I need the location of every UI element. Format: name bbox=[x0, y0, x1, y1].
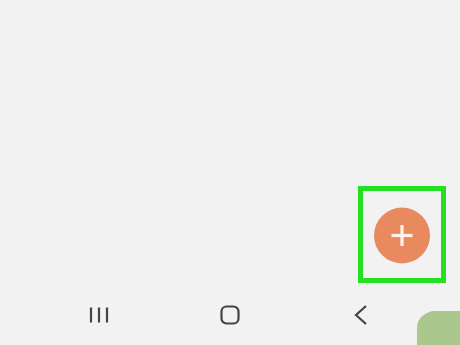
button[interactable]: Recent apps bbox=[61, 290, 137, 340]
button[interactable]: Back bbox=[322, 290, 398, 340]
button[interactable]: Add bbox=[358, 186, 446, 283]
button[interactable]: Home bbox=[192, 290, 268, 340]
